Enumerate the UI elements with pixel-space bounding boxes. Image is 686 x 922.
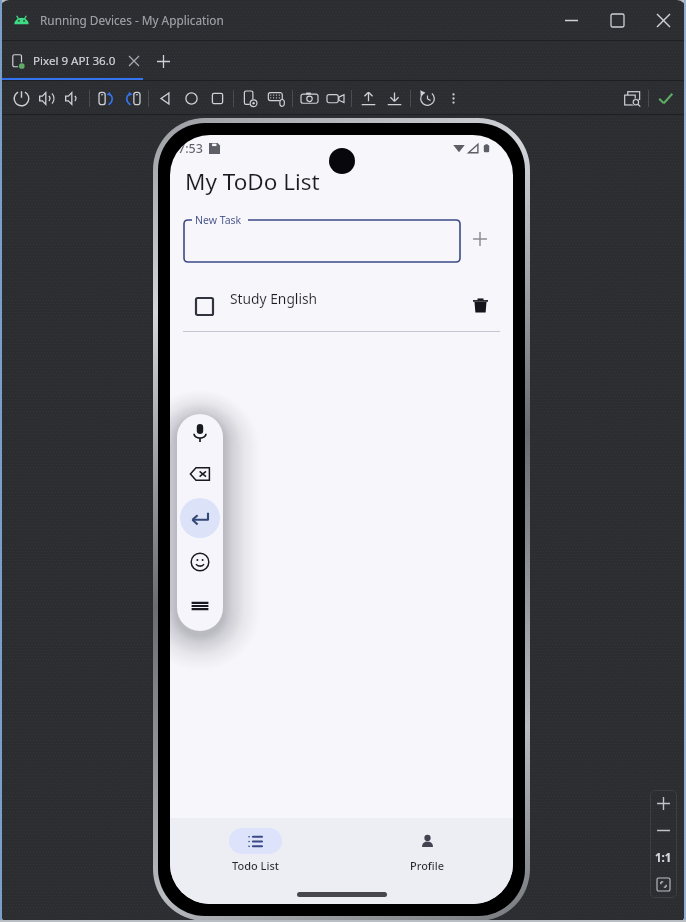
button[interactable]: Screenshot bbox=[296, 85, 322, 111]
button[interactable]: Add device bbox=[149, 47, 177, 75]
button[interactable]: Record screen bbox=[322, 85, 348, 111]
button[interactable]: Fit to screen bbox=[650, 871, 677, 898]
button[interactable]: Toggle Study English bbox=[170, 283, 513, 331]
button[interactable]: Power bbox=[8, 85, 34, 111]
button[interactable]: Volume up bbox=[34, 85, 60, 111]
button[interactable]: Hardware input bbox=[263, 85, 289, 111]
button[interactable]: Overview bbox=[204, 85, 230, 111]
button[interactable]: Volume down bbox=[60, 85, 86, 111]
button[interactable]: Actual size bbox=[650, 844, 677, 871]
button[interactable]: More bbox=[440, 85, 466, 111]
button[interactable]: Zoom in bbox=[650, 790, 677, 817]
button[interactable]: Display mode bbox=[619, 85, 645, 111]
staticText: Profile bbox=[410, 858, 445, 873]
button[interactable]: Device status bbox=[652, 85, 678, 111]
button[interactable]: Download bbox=[381, 85, 407, 111]
button[interactable]: Rotate right bbox=[119, 85, 145, 111]
button[interactable]: Pixel 9 API 36.0 bbox=[11, 41, 141, 81]
button[interactable]: Back bbox=[152, 85, 178, 111]
button[interactable]: Maximize bbox=[594, 0, 640, 40]
staticText: 7:53 bbox=[178, 140, 203, 157]
button[interactable]: History bbox=[414, 85, 440, 111]
button[interactable]: Device settings bbox=[237, 85, 263, 111]
staticText: Study English bbox=[230, 289, 318, 308]
button[interactable]: Upload bbox=[355, 85, 381, 111]
button[interactable]: Zoom out bbox=[650, 817, 677, 844]
button[interactable]: Add task bbox=[462, 221, 498, 257]
button[interactable]: Close bbox=[640, 0, 686, 40]
button[interactable]: Toggle Study English bbox=[186, 288, 222, 324]
button[interactable]: New Task bbox=[184, 210, 460, 262]
staticText: New Task bbox=[195, 213, 242, 227]
button[interactable]: Emoji bbox=[177, 540, 223, 584]
staticText: Todo List bbox=[232, 858, 279, 873]
button[interactable]: Delete Study English bbox=[463, 288, 497, 322]
staticText: 1:1 bbox=[655, 850, 672, 866]
button[interactable]: Close tab bbox=[127, 54, 141, 68]
button[interactable]: Enter bbox=[177, 496, 223, 540]
button[interactable]: Home bbox=[178, 85, 204, 111]
staticText: Running Devices - My Application bbox=[40, 12, 224, 28]
button[interactable]: Todo List bbox=[170, 818, 341, 873]
button[interactable]: Rotate left bbox=[93, 85, 119, 111]
button[interactable]: Backspace bbox=[177, 452, 223, 496]
button[interactable]: Minimize bbox=[548, 0, 594, 40]
button[interactable]: Profile bbox=[341, 818, 513, 873]
staticText: My ToDo List bbox=[185, 166, 320, 197]
button[interactable]: Keyboard menu bbox=[177, 584, 223, 628]
button[interactable]: Voice input bbox=[177, 414, 223, 452]
staticText: Pixel 9 API 36.0 bbox=[33, 53, 116, 69]
